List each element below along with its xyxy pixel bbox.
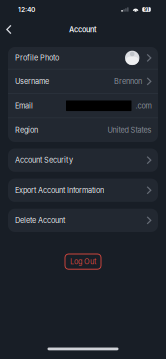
- button[interactable]: Log Out: [65, 254, 101, 269]
- staticText: Username: [15, 77, 49, 86]
- staticText: Profile Photo: [15, 53, 59, 62]
- staticText: Account: [69, 25, 97, 34]
- staticText: Brennon: [114, 77, 142, 86]
- staticText: Delete Account: [15, 216, 65, 225]
- button[interactable]: Account Security: [8, 148, 158, 172]
- staticText: 91: [144, 7, 149, 12]
- staticText: Region: [15, 126, 38, 135]
- staticText: Export Account Information: [15, 186, 104, 195]
- button[interactable]: Profile Photo: [8, 47, 158, 69]
- staticText: United States: [107, 126, 151, 135]
- button[interactable]: Back: [0, 20, 19, 39]
- staticText: Email: [15, 101, 33, 110]
- staticText: 12:40: [18, 5, 35, 14]
- button[interactable]: Delete Account: [8, 209, 158, 232]
- staticText: Log Out: [70, 257, 96, 266]
- staticText: Account Security: [15, 156, 73, 165]
- button[interactable]: Username: [8, 69, 158, 93]
- button[interactable]: Export Account Information: [8, 179, 158, 202]
- staticText: .com: [135, 101, 151, 110]
